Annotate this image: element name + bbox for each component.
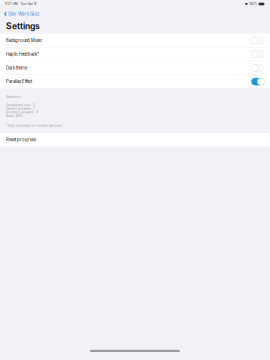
staticText: Incorrect answers: 4 [6, 110, 38, 114]
staticText: Parallax Effect [6, 79, 32, 84]
staticText: Dark theme [6, 65, 27, 70]
staticText: Ratio: 64% [6, 114, 23, 118]
staticText: Star Wars Quiz [8, 11, 39, 16]
button[interactable]: Parallax Effect [0, 75, 270, 88]
staticText: Sun Apr 12 [21, 2, 37, 6]
staticText: Statistics [6, 95, 21, 99]
staticText: Correct answers: 7 [6, 107, 35, 110]
staticText: Reset progress [6, 137, 36, 142]
staticText: Completed sets: 2 [6, 103, 35, 107]
staticText: 11:27 AM [5, 2, 18, 6]
button[interactable]: Dark theme [0, 61, 270, 74]
button[interactable]: Background Music [0, 34, 270, 47]
button[interactable]: Reset progress [0, 133, 270, 146]
button[interactable]: Haptic Feedback* [0, 47, 270, 61]
staticText: Settings [6, 21, 40, 31]
staticText: *Only available on certain devices. [6, 124, 63, 127]
staticText: Background Music [6, 38, 42, 43]
button[interactable]: Star Wars Quiz [0, 11, 270, 17]
staticText: Haptic Feedback* [6, 52, 39, 57]
staticText: 100% [249, 2, 257, 6]
